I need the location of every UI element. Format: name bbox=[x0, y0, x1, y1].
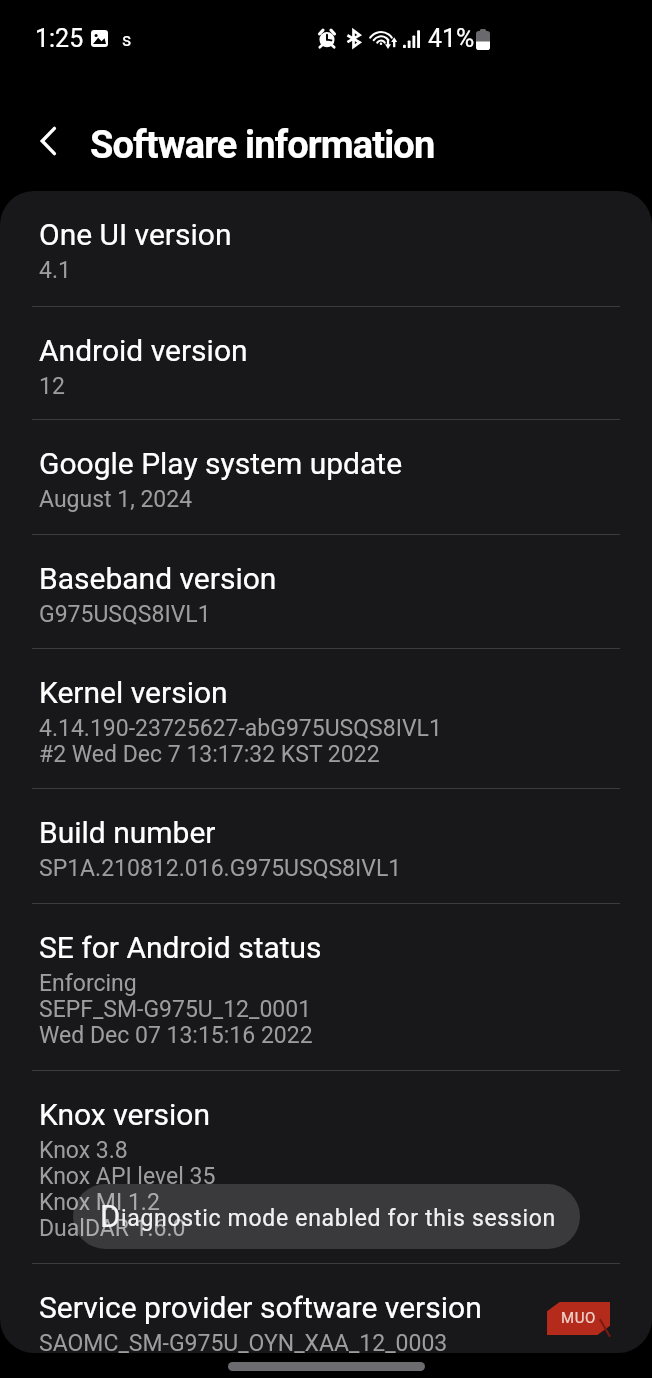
button[interactable]: Android version bbox=[0, 307, 652, 421]
staticText: #2 Wed Dec 7 13:17:32 KST 2022 bbox=[39, 741, 380, 767]
staticText: Wed Dec 07 13:15:16 2022 bbox=[39, 1022, 313, 1048]
staticText: Build number bbox=[39, 814, 216, 850]
button[interactable]: Google Play system update bbox=[0, 420, 652, 535]
staticText: Kernel version bbox=[39, 674, 228, 710]
staticText: One UI version bbox=[39, 216, 232, 252]
staticText: 4.1 bbox=[39, 257, 71, 283]
button[interactable]: Back bbox=[21, 113, 77, 169]
button[interactable]: One UI version bbox=[0, 191, 652, 307]
staticText: 41% bbox=[428, 24, 475, 53]
staticText: D bbox=[100, 1198, 121, 1234]
staticText: Knox version bbox=[39, 1096, 211, 1132]
staticText: Android version bbox=[39, 332, 248, 368]
staticText: Baseband version bbox=[39, 560, 277, 596]
staticText: Google Play system update bbox=[39, 445, 403, 481]
button[interactable]: Knox version bbox=[0, 1071, 652, 1264]
staticText: Knox MI 1.2 bbox=[39, 1189, 160, 1215]
button[interactable]: Build number bbox=[0, 789, 652, 904]
staticText: 12 bbox=[39, 373, 65, 399]
button[interactable]: Kernel version bbox=[0, 649, 652, 790]
staticText: August 1, 2024 bbox=[39, 486, 193, 512]
staticText: SAOMC_SM-G975U_OYN_XAA_12_0003 bbox=[39, 1330, 448, 1353]
staticText: SP1A.210812.016.G975USQS8IVL1 bbox=[39, 855, 402, 881]
staticText: G975USQS8IVL1 bbox=[39, 601, 211, 627]
staticText: Knox 3.8 bbox=[39, 1137, 128, 1163]
staticText: SE for Android status bbox=[39, 929, 322, 965]
staticText: SEPF_SM-G975U_12_0001 bbox=[39, 996, 312, 1022]
staticText: Software information bbox=[90, 123, 435, 168]
staticText: DualDAR 1.6.0 bbox=[39, 1215, 186, 1241]
button[interactable]: SE for Android status bbox=[0, 904, 652, 1070]
button[interactable]: Baseband version bbox=[0, 535, 652, 649]
staticText: Service provider software version bbox=[39, 1289, 482, 1325]
staticText: 4.14.190-23725627-abG975USQS8IVL1 bbox=[39, 715, 442, 741]
staticText: s bbox=[122, 29, 132, 50]
staticText: iagnostic mode enabled for this session bbox=[121, 1205, 557, 1232]
staticText: MUO bbox=[561, 1309, 596, 1327]
staticText: 1:25 bbox=[35, 24, 84, 53]
button[interactable]: Service provider software version bbox=[0, 1264, 652, 1353]
staticText: Enforcing bbox=[39, 970, 137, 996]
staticText: Knox API level 35 bbox=[39, 1163, 216, 1189]
